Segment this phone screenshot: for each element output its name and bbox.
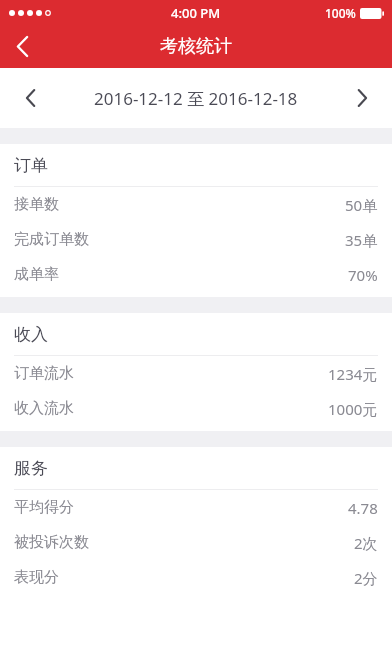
staticText: 被投诉次数 [14, 533, 89, 552]
button[interactable]: 表现分 [0, 560, 392, 595]
button[interactable]: 完成订单数 [0, 222, 392, 257]
staticText: 收入流水 [14, 399, 74, 418]
button[interactable]: 订单流水 [0, 356, 392, 391]
staticText: 70% [348, 265, 378, 285]
button[interactable]: 成单率 [0, 257, 392, 292]
staticText: 成单率 [14, 265, 59, 284]
staticText: 1000元 [328, 399, 378, 419]
staticText: 50单 [345, 195, 378, 215]
staticText: 平均得分 [14, 498, 74, 517]
staticText: 4.78 [348, 498, 378, 518]
staticText: 服务 [14, 458, 48, 479]
staticText: 2016-12-12 至 2016-12-18 [94, 87, 298, 110]
staticText: 35单 [345, 230, 378, 250]
staticText: 订单流水 [14, 364, 74, 383]
staticText: 2次 [354, 533, 378, 553]
staticText: 100% [325, 5, 356, 21]
staticText: 考核统计 [160, 35, 232, 58]
staticText: 4:00 PM [171, 4, 221, 22]
staticText: 收入 [14, 324, 48, 345]
staticText: 表现分 [14, 568, 59, 587]
button[interactable]: 平均得分 [0, 490, 392, 525]
button[interactable]: Previous week [8, 76, 52, 120]
button[interactable]: 收入流水 [0, 391, 392, 426]
staticText: 2分 [354, 568, 378, 588]
button[interactable]: Next week [340, 76, 384, 120]
staticText: 1234元 [328, 364, 378, 384]
staticText: 完成订单数 [14, 230, 89, 249]
button[interactable]: Back [0, 25, 44, 68]
button[interactable]: 被投诉次数 [0, 525, 392, 560]
staticText: 接单数 [14, 195, 59, 214]
staticText: 订单 [14, 155, 48, 176]
button[interactable]: 接单数 [0, 187, 392, 222]
